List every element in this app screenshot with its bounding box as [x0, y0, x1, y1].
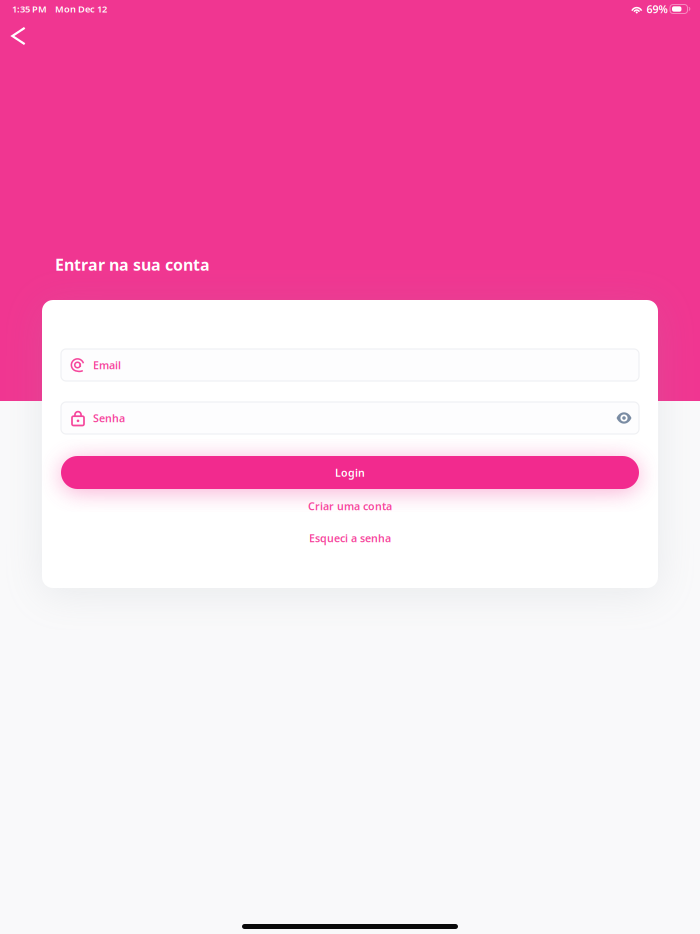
staticText: Senha	[93, 411, 125, 425]
staticText: Login	[335, 465, 365, 480]
staticText: Mon Dec 12	[55, 3, 107, 15]
staticText: Criar uma conta	[308, 499, 392, 513]
staticText: Esqueci a senha	[309, 531, 391, 545]
staticText: Email	[93, 358, 121, 372]
staticText: 1:35 PM	[12, 3, 47, 15]
button[interactable]: Show password	[611, 405, 637, 431]
staticText: 69%	[646, 2, 667, 16]
button[interactable]: Login	[61, 456, 639, 489]
button[interactable]: Back	[0, 17, 37, 55]
button[interactable]: Esqueci a senha	[61, 527, 639, 549]
staticText: Entrar na sua conta	[55, 254, 210, 275]
button[interactable]: Criar uma conta	[61, 495, 639, 517]
